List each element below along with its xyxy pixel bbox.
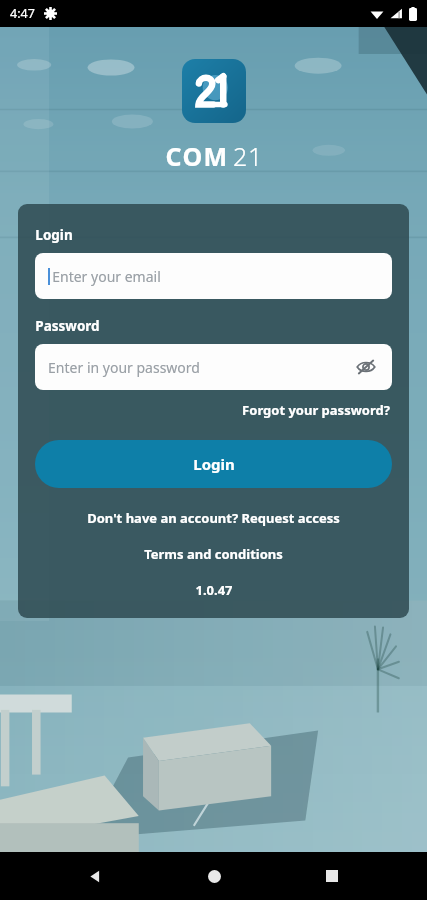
staticText: Forgot your password? bbox=[242, 401, 390, 419]
button[interactable]: Login bbox=[35, 440, 392, 488]
staticText: Login bbox=[193, 454, 235, 474]
button[interactable]: Don't have an account? Request access bbox=[35, 509, 392, 527]
button[interactable]: Enter your email bbox=[35, 253, 392, 299]
staticText: Don't have an account? Request access bbox=[87, 509, 340, 527]
other: Settings bbox=[44, 7, 57, 20]
button[interactable]: Show password bbox=[353, 354, 379, 380]
staticText: 21 bbox=[233, 139, 263, 173]
staticText: Enter your email bbox=[52, 267, 161, 286]
button[interactable]: Back bbox=[72, 853, 118, 899]
staticText: COM bbox=[165, 139, 229, 173]
button[interactable]: Home bbox=[191, 853, 237, 899]
staticText: Enter in your password bbox=[48, 358, 200, 377]
button[interactable]: Terms and conditions bbox=[35, 545, 392, 563]
button[interactable]: Forgot your password? bbox=[240, 399, 392, 421]
button[interactable]: Enter in your password bbox=[35, 344, 392, 390]
staticText: 1.0.47 bbox=[195, 581, 233, 599]
button[interactable]: Recent apps bbox=[309, 853, 355, 899]
staticText: 4:47 bbox=[10, 5, 35, 22]
staticText: Password bbox=[35, 317, 100, 335]
staticText: Login bbox=[35, 226, 73, 244]
staticText: Terms and conditions bbox=[144, 545, 283, 563]
